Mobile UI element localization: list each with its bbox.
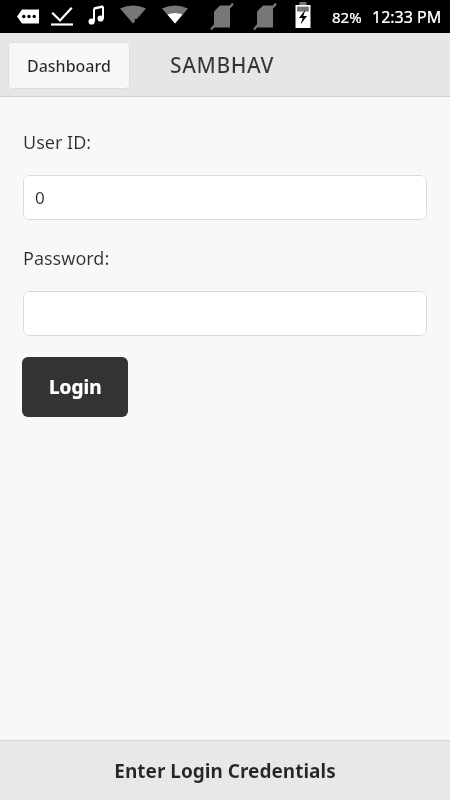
button[interactable]	[23, 291, 427, 336]
staticText: 0	[35, 186, 45, 209]
staticText: Login	[49, 374, 102, 400]
staticText: 12:33 PM	[372, 6, 442, 28]
staticText: Password:	[23, 246, 110, 271]
button[interactable]: Enter Login Credentials	[0, 741, 450, 800]
staticText: SAMBHAV	[170, 51, 275, 80]
button[interactable]: Dashboard	[8, 42, 130, 89]
button[interactable]: 0	[23, 175, 427, 220]
staticText: Enter Login Credentials	[114, 758, 336, 784]
button[interactable]: Login	[22, 357, 128, 417]
staticText: User ID:	[23, 130, 92, 155]
staticText: Dashboard	[27, 55, 111, 77]
staticText: 82%	[332, 7, 362, 27]
